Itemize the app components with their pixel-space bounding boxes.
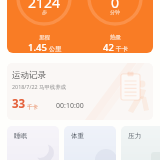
staticText: 步 <box>42 9 47 15</box>
staticText: 00:10:00 <box>56 101 84 111</box>
button[interactable]: 运动记录 <box>7 63 153 120</box>
staticText: 42 <box>103 41 114 53</box>
staticText: 公里 <box>49 45 61 53</box>
button[interactable]: 体重 <box>64 126 116 160</box>
staticText: 2124 <box>28 0 61 12</box>
staticText: 压力 <box>128 132 142 140</box>
button[interactable]: 2124 <box>14 0 74 53</box>
staticText: 0 <box>111 0 120 12</box>
staticText: 里程 <box>39 34 50 41</box>
staticText: 运动记录 <box>12 70 46 81</box>
staticText: 分钟 <box>110 9 120 15</box>
button[interactable]: 压力 <box>121 126 160 160</box>
button[interactable]: 睡眠 <box>7 126 59 160</box>
staticText: 33 <box>12 96 26 112</box>
staticText: 热量 <box>110 34 121 41</box>
staticText: 2018/7/22 马甲线养成 <box>12 83 66 90</box>
staticText: 1.45 <box>28 41 47 53</box>
button[interactable]: 0 <box>85 0 145 53</box>
staticText: 千卡 <box>27 104 38 111</box>
staticText: 千卡 <box>116 45 128 53</box>
staticText: 睡眠 <box>14 132 28 140</box>
staticText: 体重 <box>71 132 85 140</box>
